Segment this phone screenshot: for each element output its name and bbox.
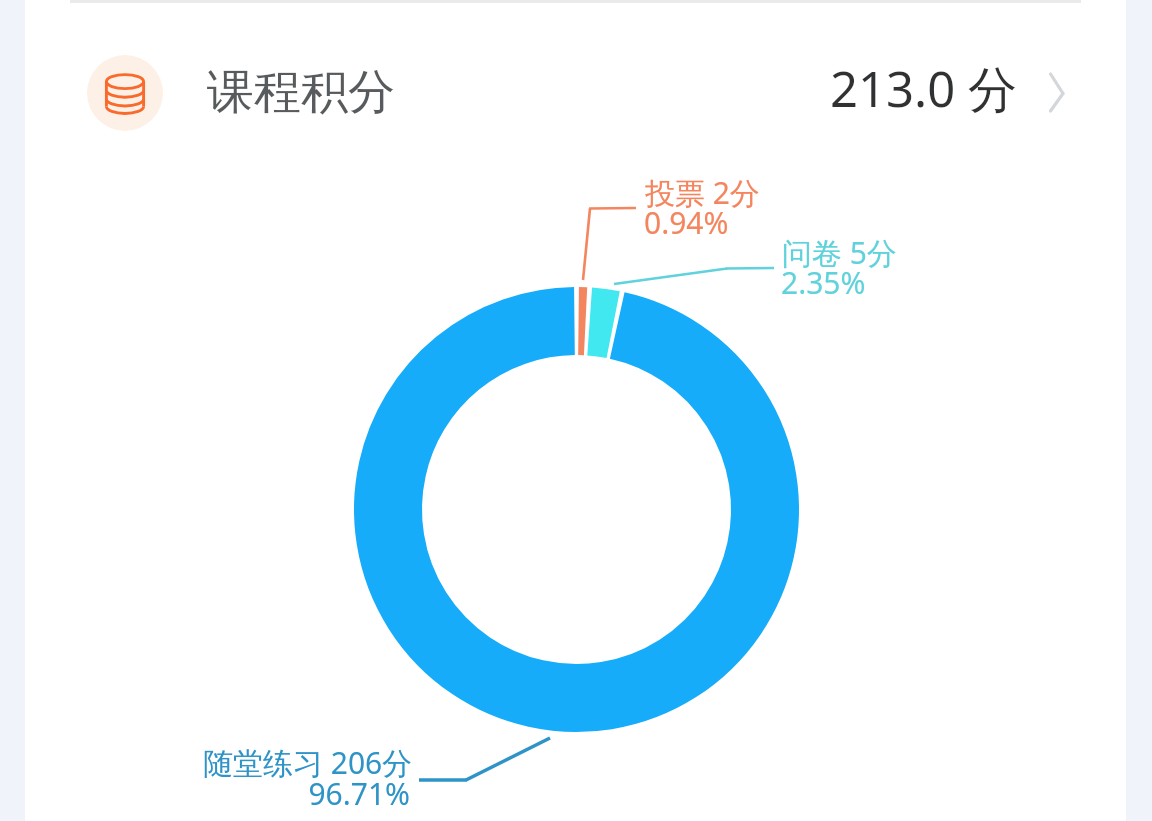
staticText: 课程积分 <box>207 63 395 122</box>
staticText: 随堂练习 206分 <box>203 742 413 783</box>
staticText: 问卷 5分 <box>782 232 897 273</box>
staticText: 投票 2分 <box>645 172 760 213</box>
staticText: 2.35% <box>781 262 866 303</box>
staticText: 213.0 分 <box>830 55 1017 122</box>
staticText: 96.71% <box>203 773 410 814</box>
other: 查看课程积分详情 <box>1025 54 1091 132</box>
staticText: 0.94% <box>644 202 729 243</box>
button[interactable]: 课程积分 <box>25 40 1126 146</box>
